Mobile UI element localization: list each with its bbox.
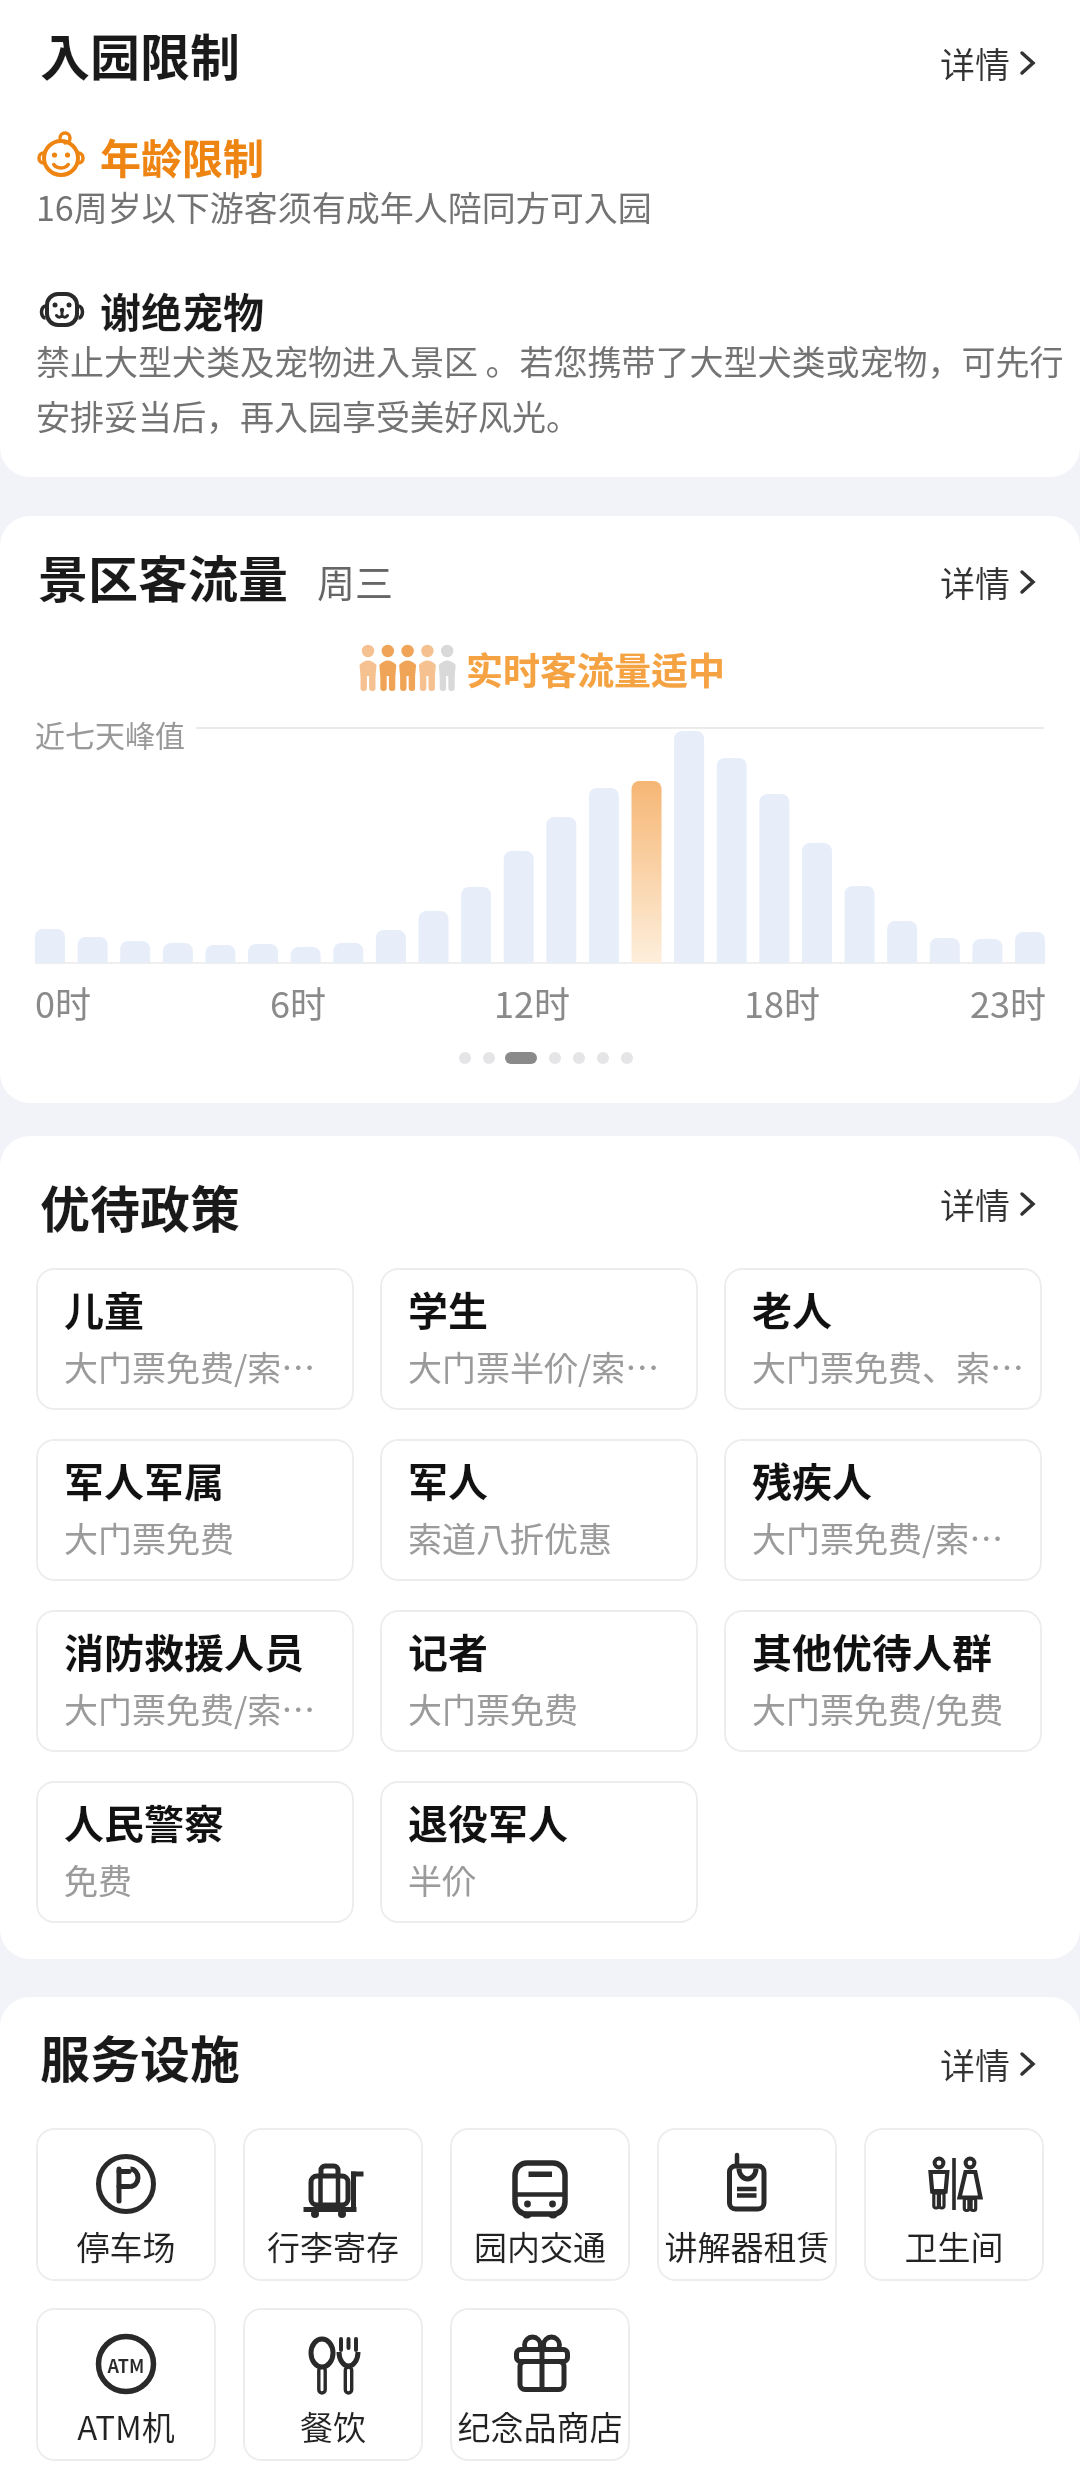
staticText: 详情 <box>940 556 1011 607</box>
staticText: 服务设施 <box>40 2020 240 2092</box>
staticText: 6时 <box>270 976 326 1028</box>
staticText: 免费 <box>64 1855 132 1904</box>
staticText: 入园限制 <box>40 18 240 90</box>
button[interactable]: 详情 <box>940 556 1036 607</box>
button[interactable]: 老人 <box>724 1268 1042 1410</box>
button[interactable]: 军人 <box>380 1439 698 1581</box>
staticText: 儿童 <box>64 1280 144 1338</box>
staticText: 人民警察 <box>64 1793 224 1851</box>
staticText: 大门票免费/索⋯ <box>64 1342 316 1391</box>
button[interactable]: 退役军人 <box>380 1781 698 1923</box>
staticText: 年龄限制 <box>100 126 264 185</box>
staticText: 详情 <box>940 2038 1011 2089</box>
button[interactable]: 纪念品商店 <box>450 2308 630 2461</box>
button[interactable]: 卫生间 <box>864 2128 1044 2281</box>
button[interactable]: 军人军属 <box>36 1439 354 1581</box>
staticText: 停车场 <box>36 2222 216 2270</box>
button[interactable]: 谢绝宠物 <box>40 280 264 339</box>
staticText: 近七天峰值 <box>35 712 185 755</box>
staticText: 景区客流量 <box>38 540 288 612</box>
staticText: 退役军人 <box>408 1793 568 1851</box>
button[interactable]: 儿童 <box>36 1268 354 1410</box>
button[interactable]: 讲解器租赁 <box>657 2128 837 2281</box>
button[interactable]: 人民警察 <box>36 1781 354 1923</box>
button[interactable]: 消防救援人员 <box>36 1610 354 1752</box>
staticText: 学生 <box>408 1280 488 1338</box>
staticText: 索道八折优惠 <box>408 1513 612 1562</box>
button[interactable]: 残疾人 <box>724 1439 1042 1581</box>
staticText: 大门票免费/索⋯ <box>752 1513 1004 1562</box>
button[interactable]: 年龄限制 <box>38 126 264 185</box>
staticText: 详情 <box>940 1178 1011 1229</box>
staticText: 其他优待人群 <box>752 1622 992 1680</box>
button[interactable]: 餐饮 <box>243 2308 423 2461</box>
button[interactable]: ATM <box>36 2308 216 2461</box>
staticText: 纪念品商店 <box>450 2402 630 2450</box>
staticText: 消防救援人员 <box>64 1622 304 1680</box>
staticText: 大门票免费 <box>408 1684 578 1733</box>
button[interactable]: 其他优待人群 <box>724 1610 1042 1752</box>
staticText: 大门票免费、索⋯ <box>752 1342 1024 1391</box>
staticText: 禁止大型犬类及宠物进入景区 。若您携带了大型犬类或宠物，可先行 安排妥当后，再入… <box>36 336 1064 440</box>
button[interactable]: 详情 <box>940 2038 1036 2089</box>
staticText: 军人军属 <box>64 1451 224 1509</box>
staticText: 卫生间 <box>864 2222 1044 2270</box>
staticText: 记者 <box>408 1622 488 1680</box>
staticText: 优待政策 <box>40 1170 240 1242</box>
staticText: 园内交通 <box>450 2222 630 2270</box>
staticText: 讲解器租赁 <box>657 2222 837 2270</box>
button[interactable]: 行李寄存 <box>243 2128 423 2281</box>
button[interactable]: 学生 <box>380 1268 698 1410</box>
staticText: 行李寄存 <box>243 2222 423 2270</box>
button[interactable]: 园内交通 <box>450 2128 630 2281</box>
staticText: 老人 <box>752 1280 832 1338</box>
staticText: 实时客流量适中 <box>466 642 725 696</box>
button[interactable]: 详情 <box>940 1178 1036 1229</box>
staticText: 大门票免费/免费 <box>752 1684 1004 1733</box>
staticText: 18时 <box>744 976 820 1028</box>
staticText: 23时 <box>970 976 1046 1028</box>
staticText: 大门票半价/索⋯ <box>408 1342 660 1391</box>
staticText: 军人 <box>408 1451 488 1509</box>
button[interactable]: 停车场 <box>36 2128 216 2281</box>
button[interactable]: 详情 <box>940 37 1036 88</box>
staticText: ATM <box>94 2352 158 2378</box>
staticText: 0时 <box>35 976 91 1028</box>
button[interactable]: 记者 <box>380 1610 698 1752</box>
staticText: 谢绝宠物 <box>100 280 264 339</box>
staticText: 详情 <box>940 37 1011 88</box>
staticText: 大门票免费/索⋯ <box>64 1684 316 1733</box>
staticText: 残疾人 <box>752 1451 872 1509</box>
staticText: 半价 <box>408 1855 476 1904</box>
staticText: 12时 <box>494 976 570 1028</box>
staticText: ATM机 <box>36 2402 216 2450</box>
staticText: 16周岁以下游客须有成年人陪同方可入园 <box>36 182 652 231</box>
staticText: 餐饮 <box>243 2402 423 2450</box>
staticText: 周三 <box>317 553 394 608</box>
staticText: 大门票免费 <box>64 1513 234 1562</box>
